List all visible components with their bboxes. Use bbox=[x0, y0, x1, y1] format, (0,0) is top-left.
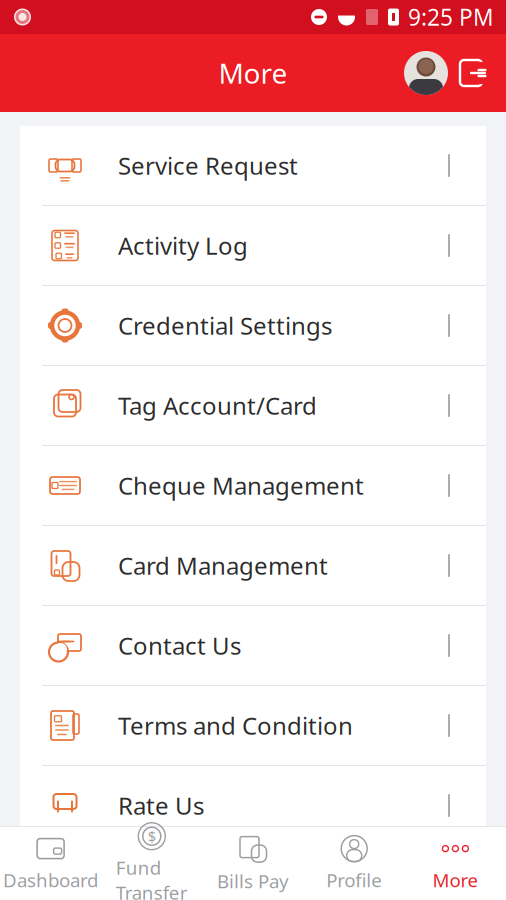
staticText: Tag Account/Card bbox=[118, 390, 317, 421]
staticText: More bbox=[432, 868, 478, 892]
staticText: Profile bbox=[326, 868, 382, 892]
staticText: Service Request bbox=[118, 150, 298, 181]
button[interactable]: Tag Account/Card bbox=[20, 366, 486, 445]
button[interactable]: Cheque Management bbox=[20, 446, 486, 525]
staticText: Cheque Management bbox=[118, 470, 364, 501]
button[interactable]: Bills Pay bbox=[202, 827, 304, 899]
staticText: Contact Us bbox=[118, 630, 241, 661]
button[interactable]: About Us bbox=[20, 846, 486, 900]
staticText: Fund Transfer bbox=[116, 855, 188, 900]
button[interactable]: Activity Log bbox=[20, 206, 486, 285]
staticText: Terms and Condition bbox=[118, 710, 353, 741]
button[interactable]: Terms and Condition bbox=[20, 686, 486, 765]
button[interactable]: Profile bbox=[304, 827, 405, 899]
staticText: Dashboard bbox=[3, 868, 98, 892]
button[interactable]: Card Management bbox=[20, 526, 486, 605]
staticText: More bbox=[218, 54, 287, 92]
button[interactable]: Profile photo bbox=[404, 51, 448, 95]
staticText: $ bbox=[148, 826, 156, 846]
button[interactable]: Service Request bbox=[20, 126, 486, 205]
button[interactable]: $ bbox=[101, 827, 202, 899]
button[interactable]: Dashboard bbox=[0, 827, 101, 899]
staticText: Rate Us bbox=[118, 790, 204, 821]
button[interactable]: Credential Settings bbox=[20, 286, 486, 365]
button[interactable]: More bbox=[405, 827, 506, 899]
staticText: Activity Log bbox=[118, 230, 248, 261]
staticText: 9:25 PM bbox=[408, 2, 494, 32]
staticText: Card Management bbox=[118, 550, 328, 581]
staticText: About Us bbox=[118, 870, 222, 900]
button[interactable]: Rate Us bbox=[20, 766, 486, 845]
staticText: Bills Pay bbox=[217, 869, 289, 893]
button[interactable]: Contact Us bbox=[20, 606, 486, 685]
button[interactable]: Log out bbox=[448, 50, 494, 96]
staticText: Credential Settings bbox=[118, 310, 332, 341]
